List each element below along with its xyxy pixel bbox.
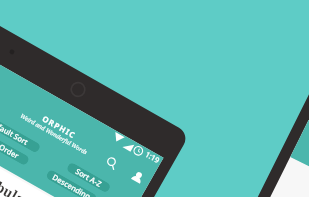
staticText: Fabula — [0, 169, 28, 197]
staticText: Order — [0, 142, 21, 161]
button[interactable]: Search — [98, 149, 126, 177]
button[interactable]: Account — [124, 163, 152, 191]
staticText: Sort A-Z — [74, 166, 103, 189]
staticText: Default Sort — [0, 117, 30, 147]
button[interactable] — [0, 129, 119, 197]
button[interactable]: Order — [0, 136, 30, 166]
staticText: 1:19 — [143, 149, 161, 165]
button[interactable]: Sort A-Z — [66, 162, 112, 194]
staticText: Weird and Wonderful Words — [19, 111, 89, 156]
button[interactable]: Default Sort — [0, 111, 41, 154]
staticText: ORPHIC — [40, 113, 78, 141]
staticText: Descending — [51, 172, 93, 197]
button[interactable]: Descending — [45, 169, 98, 197]
